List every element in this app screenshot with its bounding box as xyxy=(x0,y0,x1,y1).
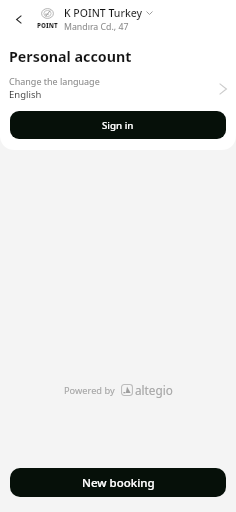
staticText: K POINT Turkey xyxy=(64,6,143,20)
button[interactable]: Back xyxy=(7,7,31,31)
button[interactable]: New booking xyxy=(10,468,226,497)
staticText: Sign in xyxy=(102,119,134,132)
staticText: POINT xyxy=(37,21,58,30)
staticText: Powered by xyxy=(64,384,115,397)
staticText: New booking xyxy=(82,475,155,491)
staticText: Mandıra Cd., 47 xyxy=(64,21,129,33)
staticText: altegio xyxy=(135,382,173,398)
button[interactable]: Sign in xyxy=(10,111,226,139)
staticText: Personal account xyxy=(9,47,132,66)
staticText: English xyxy=(9,88,42,101)
staticText: Change the language xyxy=(9,75,100,87)
button[interactable]: Change the language xyxy=(0,70,236,100)
